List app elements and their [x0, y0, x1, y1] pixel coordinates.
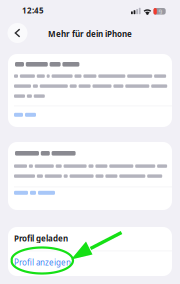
button[interactable]: Profil anzeigen [0, 0, 152, 21]
staticText: Profil anzeigen [14, 257, 71, 268]
button[interactable]: Konfiguration fortsetzen [0, 0, 164, 23]
button[interactable]: Mehr erfahren [0, 0, 164, 21]
button[interactable]: Hinweis [0, 0, 164, 51]
button[interactable]: Zurück [0, 0, 26, 26]
staticText: 9 [159, 8, 163, 16]
staticText: Mehr für dein iPhone [48, 29, 132, 39]
button[interactable]: Konfiguration abschließen [0, 0, 164, 45]
staticText: 12:45 [22, 5, 44, 16]
staticText: Profil geladen [14, 233, 68, 244]
